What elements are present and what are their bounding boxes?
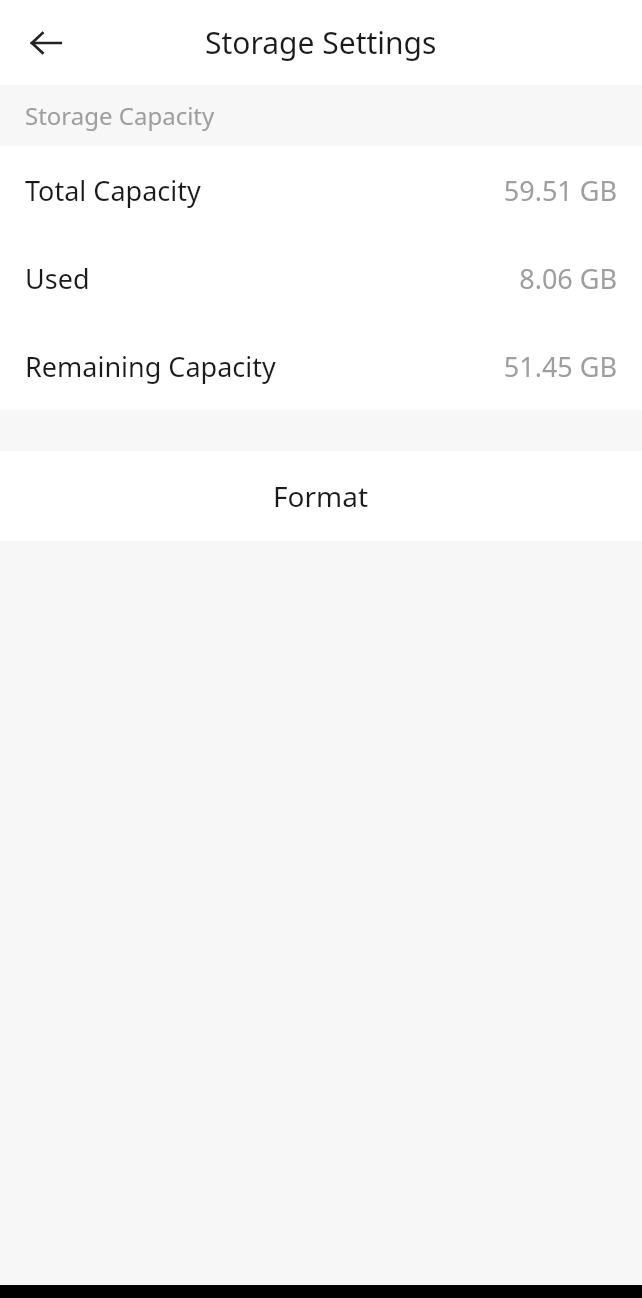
staticText: 8.06 GB	[519, 260, 617, 297]
button[interactable]: Total Capacity	[0, 146, 642, 234]
staticText: 59.51 GB	[503, 172, 617, 209]
button[interactable]: Format	[0, 451, 642, 541]
staticText: Total Capacity	[25, 172, 201, 209]
button[interactable]: Used	[0, 234, 642, 322]
staticText: Format	[273, 477, 369, 515]
staticText: Storage Capacity	[25, 99, 215, 132]
staticText: Remaining Capacity	[25, 348, 276, 385]
staticText: Storage Settings	[205, 22, 437, 63]
staticText: 51.45 GB	[503, 348, 617, 385]
button[interactable]: Remaining Capacity	[0, 322, 642, 410]
staticText: Used	[25, 260, 90, 297]
button[interactable]: Back	[14, 11, 78, 75]
